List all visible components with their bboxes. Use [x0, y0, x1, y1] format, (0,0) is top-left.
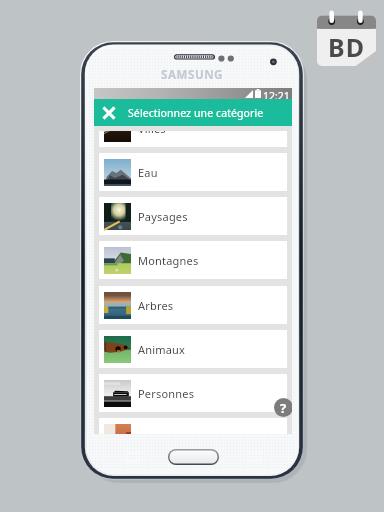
button[interactable]: Aide	[274, 398, 292, 417]
staticText: Montagnes	[138, 253, 199, 268]
button[interactable]: Animaux	[99, 330, 287, 368]
staticText: Villes	[138, 126, 166, 136]
staticText: BD	[328, 30, 365, 64]
button[interactable]: Personnes	[99, 374, 287, 412]
staticText: Paysages	[138, 209, 188, 224]
button[interactable]: Calendrier BD	[317, 10, 376, 66]
staticText: ?	[280, 399, 287, 417]
button[interactable]: Fermer	[94, 99, 121, 126]
button[interactable]: Paysages	[99, 197, 287, 235]
button[interactable]: Eau	[99, 153, 287, 191]
staticText: SAMSUNG	[161, 67, 224, 83]
button[interactable]: Montagnes	[99, 241, 287, 279]
staticText: Animaux	[138, 342, 186, 357]
button[interactable]: Sports	[99, 418, 287, 434]
staticText: Eau	[138, 165, 158, 180]
button[interactable]: Accueil	[168, 449, 219, 465]
button[interactable]: Arbres	[99, 286, 287, 324]
button[interactable]: Villes	[99, 126, 287, 147]
staticText: Arbres	[138, 298, 174, 313]
staticText: Personnes	[138, 386, 195, 401]
staticText: 12:21	[263, 89, 290, 100]
staticText: Sélectionnez une catégorie	[128, 106, 264, 120]
